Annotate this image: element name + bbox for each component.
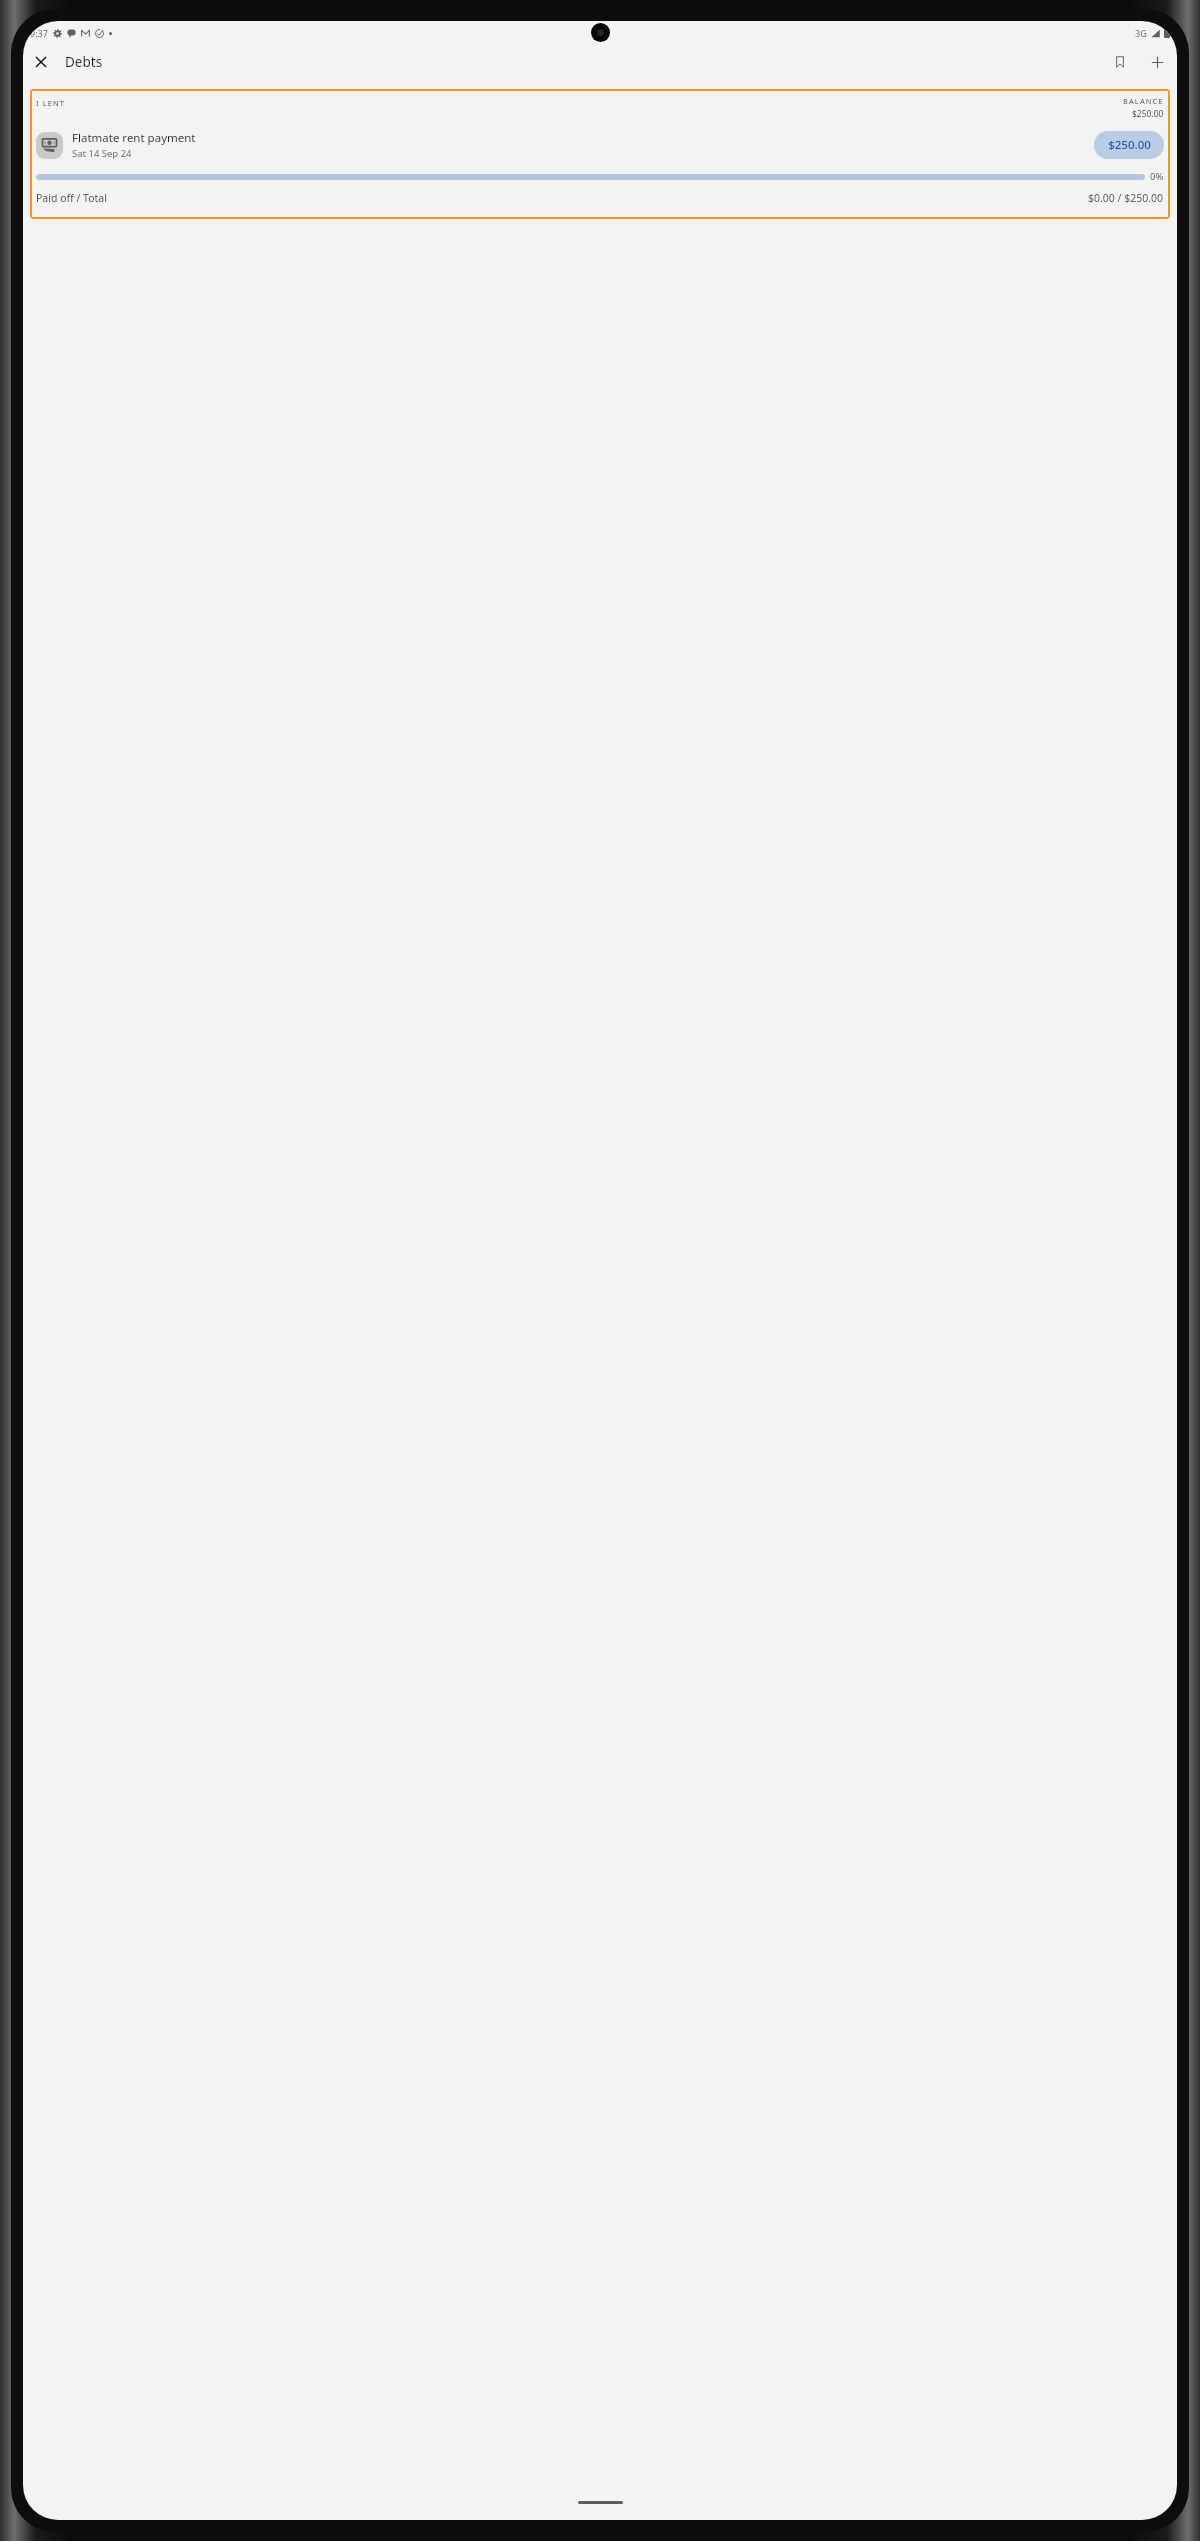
staticText: $250.00	[1132, 108, 1164, 120]
staticText: BALANCE	[1123, 96, 1164, 106]
button[interactable]: Close	[26, 47, 56, 77]
staticText: Sat 14 Sep 24	[72, 147, 132, 160]
staticText: Flatmate rent payment	[72, 130, 196, 146]
staticText: 9:37	[30, 27, 48, 39]
button[interactable]: Bookmark	[1105, 47, 1135, 77]
staticText: $250.00	[1108, 137, 1151, 153]
staticText: 0%	[1150, 170, 1164, 183]
button[interactable]: I LENT	[30, 89, 1170, 219]
button[interactable]: Add	[1142, 47, 1172, 77]
button[interactable]: Flatmate rent payment	[36, 130, 1164, 160]
staticText: I LENT	[36, 98, 66, 108]
staticText: 3G	[1135, 27, 1147, 39]
staticText: Paid off / Total	[36, 191, 107, 205]
button[interactable]: $250.00	[1094, 131, 1164, 159]
staticText: Debts	[65, 53, 103, 71]
staticText: $0.00 / $250.00	[1088, 191, 1164, 205]
